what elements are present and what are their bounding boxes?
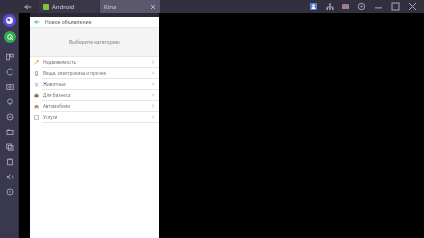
button[interactable]: Volume [1,169,19,184]
button[interactable]: Kina [100,0,160,13]
button[interactable]: Back [33,18,41,26]
button[interactable]: Вещи, электроника и прочее [30,68,159,78]
staticText: Kina [104,3,117,11]
button[interactable]: Android [39,0,99,13]
button[interactable]: Messages [340,1,351,12]
button[interactable]: Apps [1,49,19,64]
button[interactable]: Screenshot [1,79,19,94]
button[interactable]: Rotate [1,64,19,79]
button[interactable]: Settings [356,1,367,12]
button[interactable]: Macro [1,109,19,124]
button[interactable]: Game center [4,31,16,43]
button[interactable]: Multi instance [324,1,335,12]
staticText: Android [52,3,75,11]
staticText: Автомобили [43,103,151,109]
staticText: Услуги [43,114,151,120]
staticText: Вещи, электроника и прочее [43,70,151,76]
button[interactable]: Paste [1,154,19,169]
staticText: Животные [43,81,151,87]
staticText: Для бизнеса [43,92,151,98]
button[interactable]: Close [407,1,418,12]
button[interactable]: Location [1,94,19,109]
button[interactable]: Copy [1,139,19,154]
staticText: Недвижимость [43,59,151,65]
button[interactable]: Media manager [1,124,19,139]
staticText: Выберите категорию [69,39,120,46]
button[interactable]: Account [308,1,319,12]
button[interactable]: BlueStacks [3,14,16,27]
button[interactable]: Help [1,184,19,199]
button[interactable]: Услуги [30,112,159,122]
button[interactable]: Для бизнеса [30,90,159,100]
button[interactable]: Животные [30,79,159,89]
button[interactable]: Back [22,1,34,13]
staticText: Новое объявление [45,19,92,26]
button[interactable]: Minimise [373,1,384,12]
button[interactable]: Автомобили [30,101,159,111]
button[interactable]: Недвижимость [30,57,159,67]
button[interactable]: Maximise [390,1,401,12]
button[interactable]: Close tab [149,3,156,10]
